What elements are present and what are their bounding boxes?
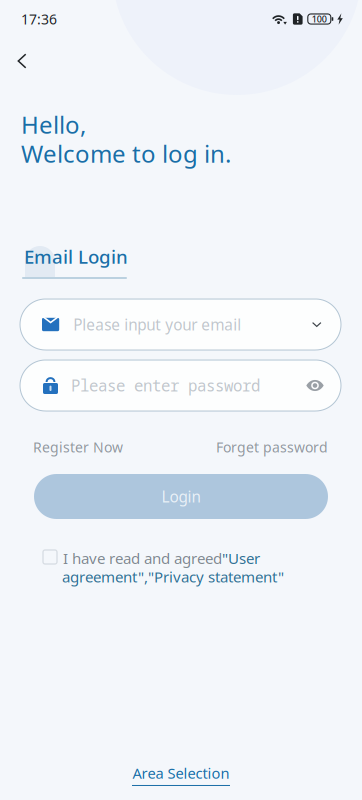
button[interactable]: Please enter password [20,360,341,411]
button[interactable]: Register Now [33,437,123,457]
button[interactable]: Back [2,41,42,81]
button[interactable]: Login [34,474,328,519]
staticText: Area Selection [132,763,229,783]
staticText: Forget password [216,437,328,457]
button[interactable]: Email Login [24,243,134,269]
staticText: agreement","Privacy statement" [62,566,284,587]
button[interactable]: Forget password [216,437,328,457]
staticText: Email Login [24,244,128,269]
staticText: Register Now [33,437,123,457]
button[interactable]: Area Selection [121,763,241,786]
button[interactable]: Please input your email [20,299,341,350]
staticText: 100 [312,13,327,25]
staticText: Please enter password [71,375,260,396]
staticText: Welcome to log in. [21,137,231,170]
staticText: Login [161,486,200,507]
staticText: 17:36 [21,9,57,29]
staticText: I have read and agreed [63,548,222,568]
staticText: Please input your email [73,314,241,335]
staticText: Hello, [21,108,86,141]
button[interactable]: Agree to user agreement and privacy stat… [43,550,57,564]
staticText: "User [222,548,260,568]
